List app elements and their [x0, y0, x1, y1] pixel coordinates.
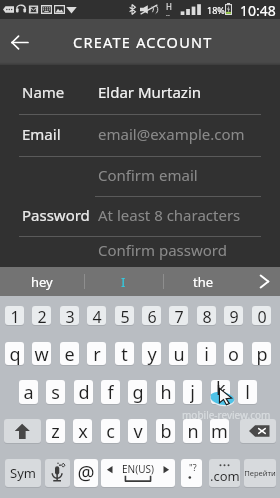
- staticText: m: [211, 419, 228, 443]
- button[interactable]: @: [74, 459, 98, 487]
- button[interactable]: g: [128, 380, 147, 404]
- button[interactable]: p: [252, 342, 271, 365]
- button[interactable]: Name: [0, 73, 280, 115]
- button[interactable]: Sym: [5, 459, 41, 487]
- button[interactable]: Voice input: [45, 459, 70, 487]
- staticText: Confirm email: [98, 165, 198, 185]
- staticText: i: [204, 342, 209, 365]
- button[interactable]: u: [169, 342, 188, 365]
- button[interactable]: j: [183, 380, 202, 404]
- staticText: 9: [229, 306, 239, 325]
- button[interactable]: Backspace: [240, 419, 276, 443]
- staticText: 6: [147, 306, 157, 325]
- staticText: Confirm password: [98, 240, 227, 260]
- staticText: u: [173, 342, 185, 365]
- button[interactable]: 4: [87, 306, 106, 325]
- staticText: hey: [31, 273, 53, 291]
- button[interactable]: .com: [209, 459, 240, 487]
- button[interactable]: d: [74, 380, 93, 404]
- button[interactable]: 8: [197, 306, 216, 325]
- staticText: mobile-review.com: [182, 408, 271, 422]
- staticText: Name: [22, 82, 65, 102]
- button[interactable]: 3: [60, 306, 79, 325]
- button[interactable]: Back: [6, 28, 34, 56]
- button[interactable]: 5: [115, 306, 134, 325]
- button[interactable]: 7: [169, 306, 188, 325]
- button[interactable]: q: [5, 342, 24, 365]
- button[interactable]: I: [84, 267, 163, 296]
- button[interactable]: 6: [142, 306, 161, 325]
- staticText: EN(US): [122, 462, 154, 476]
- button[interactable]: Password: [0, 197, 280, 237]
- button[interactable]: hey: [0, 267, 84, 296]
- button[interactable]: z: [46, 419, 65, 443]
- button[interactable]: y: [142, 342, 161, 365]
- staticText: j: [190, 380, 195, 404]
- staticText: email@example.com: [98, 124, 245, 144]
- button[interactable]: Перейти: [244, 459, 276, 487]
- staticText: Email: [22, 124, 61, 144]
- staticText: H: [166, 1, 172, 12]
- button[interactable]: 2: [32, 306, 51, 325]
- staticText: 1: [10, 306, 20, 325]
- staticText: o: [228, 342, 239, 365]
- staticText: k: [216, 376, 226, 396]
- button[interactable]: m: [210, 419, 229, 443]
- button[interactable]: Punctuation: [181, 459, 202, 487]
- staticText: z: [51, 419, 60, 443]
- staticText: l: [245, 380, 250, 404]
- button[interactable]: b: [156, 419, 175, 443]
- staticText: 2: [37, 306, 47, 325]
- staticText: At least 8 characters: [98, 205, 241, 225]
- staticText: Перейти: [244, 468, 276, 478]
- staticText: c: [106, 419, 115, 443]
- button[interactable]: Email: [0, 115, 280, 157]
- staticText: s: [51, 380, 60, 404]
- staticText: y: [147, 342, 157, 365]
- button[interactable]: e: [60, 342, 79, 365]
- button[interactable]: i: [197, 342, 216, 365]
- staticText: w: [34, 342, 49, 365]
- staticText: h: [160, 380, 172, 404]
- button[interactable]: Shift: [4, 419, 41, 443]
- button[interactable]: the: [163, 267, 244, 296]
- button[interactable]: a: [19, 380, 38, 404]
- staticText: b: [160, 419, 172, 443]
- button[interactable]: 0: [252, 306, 271, 325]
- button[interactable]: Confirm email: [0, 157, 280, 197]
- button[interactable]: v: [128, 419, 147, 443]
- button[interactable]: 1: [5, 306, 24, 325]
- button[interactable]: 9: [224, 306, 243, 325]
- staticText: g: [132, 380, 144, 404]
- button[interactable]: Space: [101, 459, 175, 487]
- staticText: 8: [202, 306, 212, 325]
- button[interactable]: f: [101, 380, 120, 404]
- button[interactable]: More suggestions: [246, 267, 280, 296]
- staticText: e: [64, 342, 75, 365]
- staticText: 10:48: [240, 1, 276, 20]
- staticText: a: [23, 380, 34, 404]
- staticText: v: [133, 419, 143, 443]
- staticText: k: [216, 380, 226, 404]
- staticText: Eldar Murtazin: [98, 82, 202, 102]
- staticText: f: [107, 380, 114, 404]
- button[interactable]: x: [73, 419, 92, 443]
- staticText: CREATE ACCOUNT: [73, 32, 213, 52]
- button[interactable]: r: [87, 342, 106, 365]
- staticText: x: [78, 419, 88, 443]
- button[interactable]: k: [211, 380, 230, 404]
- staticText: 7: [174, 306, 184, 325]
- button[interactable]: t: [115, 342, 134, 365]
- staticText: 0: [257, 306, 267, 325]
- staticText: 18%: [207, 4, 225, 16]
- button[interactable]: l: [238, 380, 257, 404]
- staticText: t: [121, 342, 128, 365]
- button[interactable]: w: [32, 342, 51, 365]
- button[interactable]: Confirm password: [0, 237, 280, 267]
- button[interactable]: s: [46, 380, 65, 404]
- button[interactable]: o: [224, 342, 243, 365]
- button[interactable]: n: [183, 419, 202, 443]
- button[interactable]: h: [156, 380, 175, 404]
- staticText: @: [77, 460, 95, 486]
- button[interactable]: c: [101, 419, 120, 443]
